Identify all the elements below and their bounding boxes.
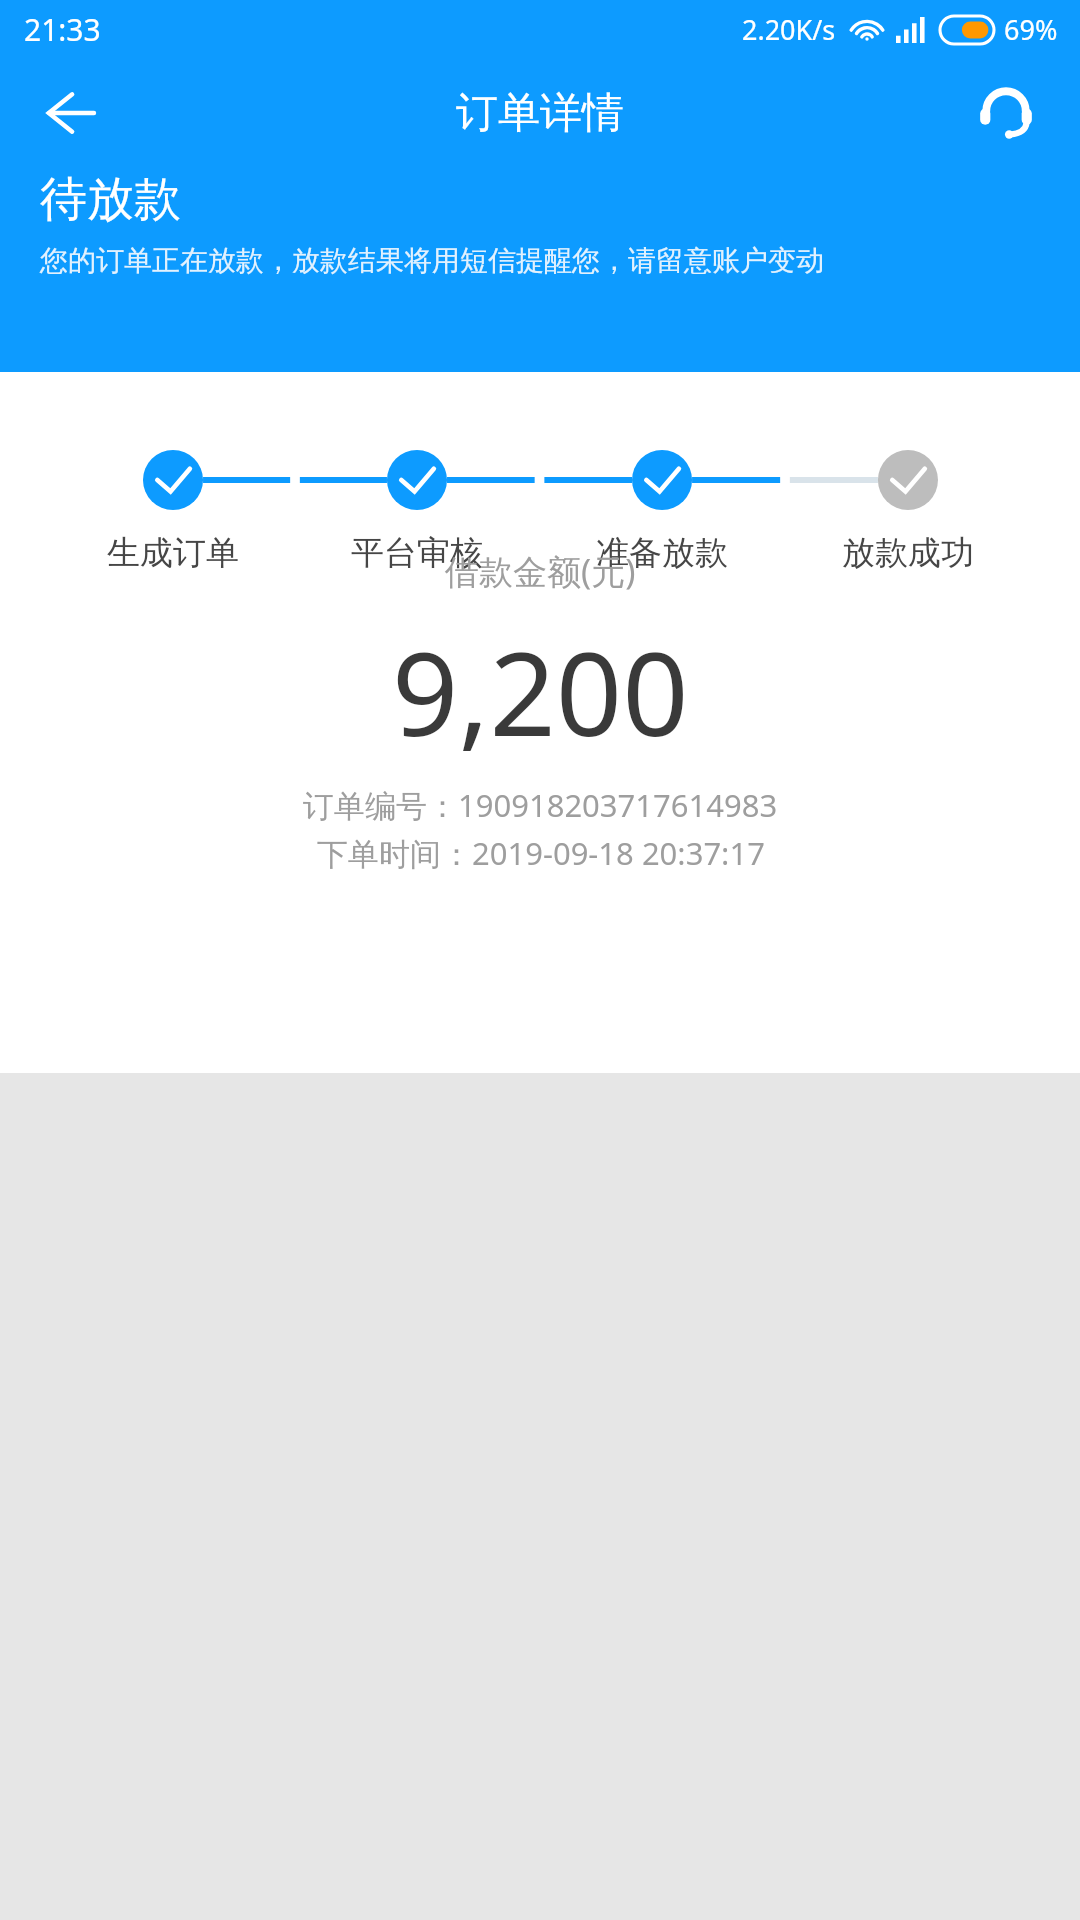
- button[interactable]: Back: [18, 63, 118, 163]
- staticText: 平台审核: [351, 532, 483, 574]
- staticText: 放款成功: [842, 532, 974, 574]
- staticText: 下单时间：2019-09-18 20:37:17: [317, 832, 765, 874]
- staticText: 您的订单正在放款，放款结果将用短信提醒您，请留意账户变动: [40, 243, 824, 278]
- button[interactable]: 放款成功: [789, 532, 1027, 574]
- staticText: 待放款: [40, 170, 181, 229]
- button[interactable]: 生成订单: [54, 532, 292, 574]
- staticText: 21:33: [24, 9, 101, 50]
- button[interactable]: 准备放款: [543, 532, 781, 574]
- staticText: 准备放款: [596, 532, 728, 574]
- staticText: 69%: [1004, 11, 1058, 48]
- button[interactable]: Customer service: [956, 63, 1056, 163]
- staticText: 2.20K/s: [742, 11, 836, 48]
- button[interactable]: 平台审核: [298, 532, 536, 574]
- staticText: 借款金额(元): [445, 548, 636, 594]
- staticText: 订单编号：190918203717614983: [303, 784, 778, 826]
- staticText: 订单详情: [456, 87, 624, 140]
- staticText: 生成订单: [107, 532, 239, 574]
- staticText: 9,200: [392, 612, 689, 770]
